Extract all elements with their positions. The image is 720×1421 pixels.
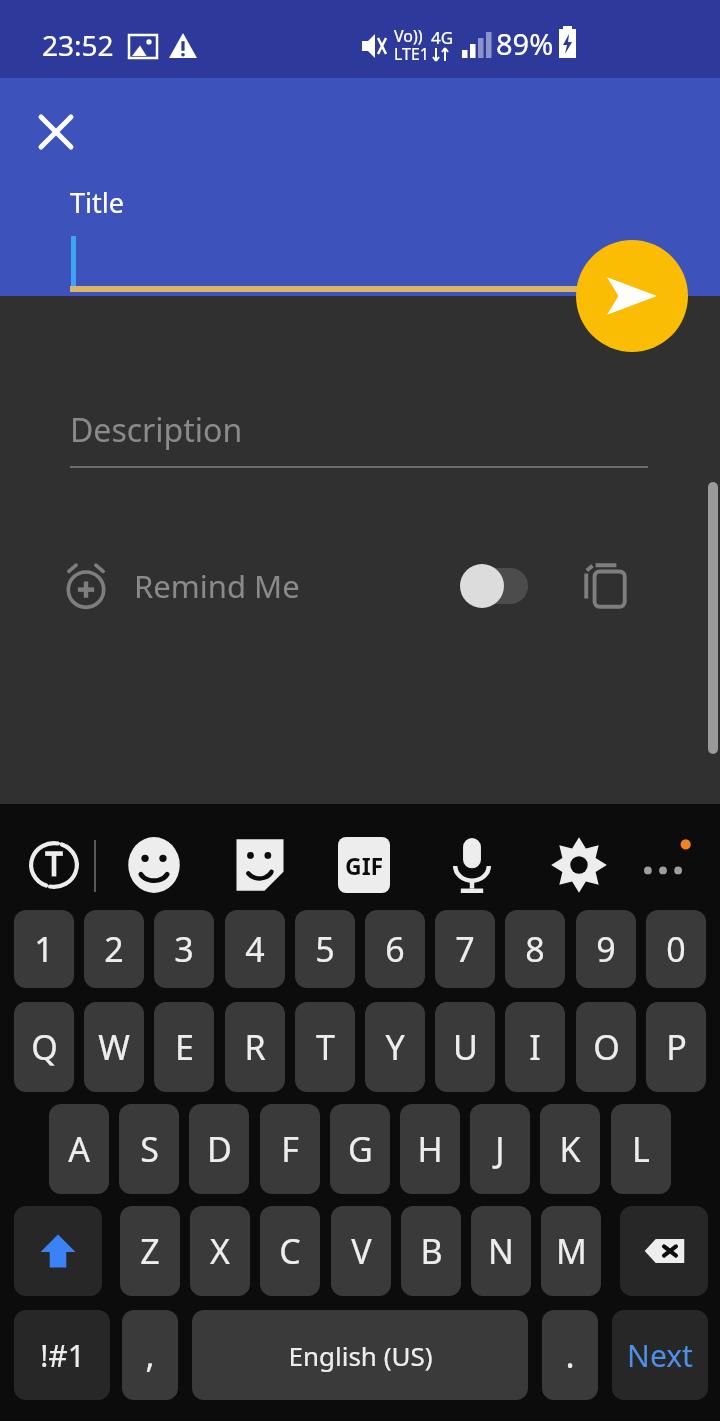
button[interactable]: E [154,1002,214,1092]
button[interactable]: T [295,1002,355,1092]
button[interactable]: GIF [334,836,394,894]
button[interactable]: Y [365,1002,425,1092]
button[interactable]: O [576,1002,636,1092]
staticText: J [495,1126,505,1172]
staticText: 2 [104,926,124,972]
button[interactable]: Close [22,98,90,166]
staticText: R [244,1024,266,1070]
staticText: B [420,1228,443,1274]
button[interactable]: 7 [435,910,495,988]
button[interactable]: , [122,1310,178,1400]
button[interactable]: Z [120,1206,180,1296]
staticText: M [556,1228,587,1274]
button[interactable]: Translate [24,836,84,894]
button[interactable]: Shift [14,1206,102,1296]
staticText: 89% [496,24,554,63]
button[interactable]: J [470,1104,530,1194]
staticText: , [145,1332,155,1378]
staticText: 23:52 [42,26,114,64]
button[interactable]: G [330,1104,390,1194]
button[interactable]: K [540,1104,600,1194]
staticText: Next [627,1335,693,1376]
staticText: 5 [315,926,335,972]
staticText: Description [70,408,243,452]
button[interactable]: M [541,1206,601,1296]
staticText: Title [70,184,124,221]
staticText: 8 [525,926,545,972]
button[interactable]: Q [14,1002,74,1092]
staticText: 6 [385,926,405,972]
button[interactable]: 6 [365,910,425,988]
button[interactable]: Copy [566,546,646,626]
button[interactable]: Keyboard settings [546,836,612,894]
button[interactable]: 4 [225,910,285,988]
button[interactable]: Next [612,1310,708,1400]
staticText: F [281,1126,299,1172]
button[interactable]: D [189,1104,249,1194]
staticText: T [316,1024,335,1070]
button[interactable]: W [84,1002,144,1092]
button[interactable]: A [49,1104,109,1194]
staticText: Y [385,1024,405,1070]
staticText: N [488,1228,514,1274]
button[interactable]: Emoji [122,836,186,894]
staticText: 1 [34,926,54,972]
button[interactable]: !#1 [14,1310,110,1400]
staticText: V [351,1228,372,1274]
button[interactable]: . [542,1310,598,1400]
button[interactable]: Stickers [228,836,292,894]
staticText: LTE1 [394,43,430,65]
button[interactable]: Backspace [620,1206,708,1296]
button[interactable]: English (US) [192,1310,528,1400]
button[interactable]: X [190,1206,250,1296]
button[interactable]: P [646,1002,706,1092]
button[interactable]: 8 [505,910,565,988]
staticText: U [453,1024,478,1070]
staticText: P [666,1024,687,1070]
staticText: 0 [666,926,686,972]
staticText: H [417,1126,443,1172]
staticText: Q [31,1024,58,1070]
staticText: O [593,1024,620,1070]
staticText: W [98,1024,130,1070]
staticText: S [140,1126,159,1172]
button[interactable]: Remind me toggle [450,548,546,624]
button[interactable]: V [331,1206,391,1296]
staticText: K [559,1126,581,1172]
staticText: I [529,1024,541,1070]
staticText: A [68,1126,90,1172]
button[interactable]: 9 [576,910,636,988]
staticText: Vo)) [394,25,423,47]
button[interactable]: 3 [154,910,214,988]
button[interactable]: Description [70,404,648,466]
staticText: 4 [245,926,265,972]
staticText: C [279,1228,301,1274]
staticText: D [207,1126,232,1172]
staticText: English (US) [288,1338,433,1373]
button[interactable]: 1 [14,910,74,988]
button[interactable]: Voice input [440,836,504,894]
button[interactable]: U [435,1002,495,1092]
staticText: 9 [596,926,616,972]
button[interactable] [70,228,650,290]
button[interactable]: H [400,1104,460,1194]
button[interactable]: 5 [295,910,355,988]
button[interactable]: B [401,1206,461,1296]
button[interactable]: R [225,1002,285,1092]
button[interactable]: Remind Me [60,542,360,630]
button[interactable]: Send [576,240,688,352]
button[interactable]: N [471,1206,531,1296]
button[interactable]: C [260,1206,320,1296]
staticText: Z [140,1228,160,1274]
staticText: Remind Me [134,565,300,607]
button[interactable]: S [119,1104,179,1194]
button[interactable]: L [611,1104,671,1194]
staticText: 7 [455,926,475,972]
button[interactable]: F [260,1104,320,1194]
staticText: GIF [345,850,384,881]
button[interactable]: I [505,1002,565,1092]
staticText: . [565,1332,575,1378]
button[interactable]: 0 [646,910,706,988]
button[interactable]: More options [632,836,694,894]
button[interactable]: 2 [84,910,144,988]
